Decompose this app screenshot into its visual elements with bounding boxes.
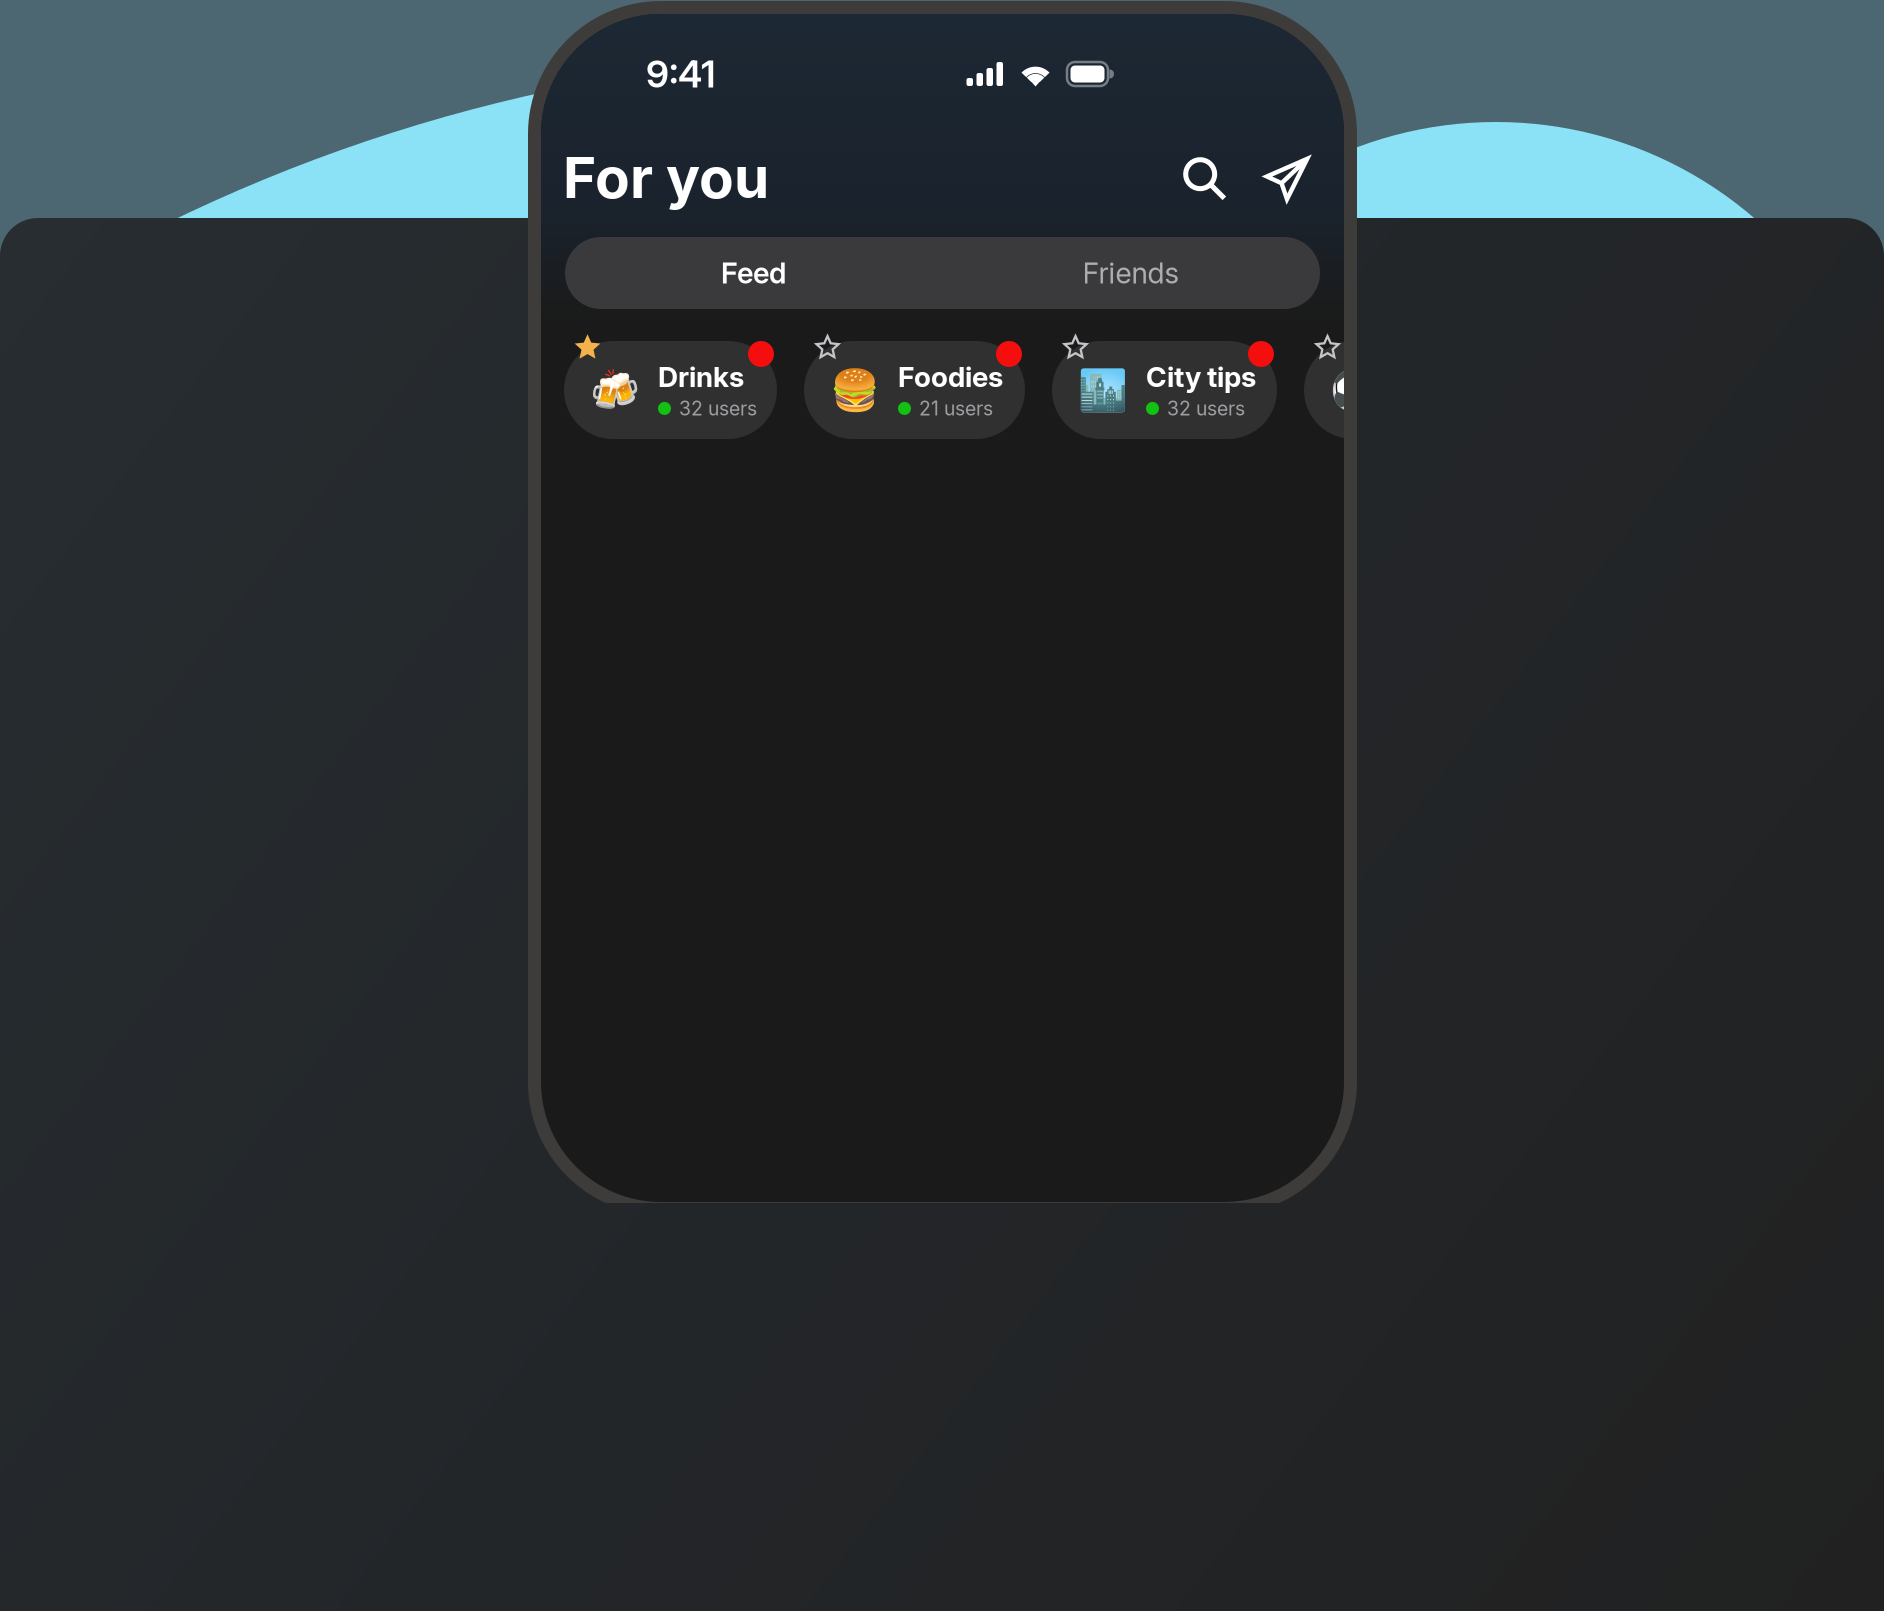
staticText: 32 users <box>1167 397 1245 420</box>
button[interactable]: 🏙️ <box>1052 328 1277 439</box>
staticText: For you <box>563 143 769 212</box>
staticText: Feed <box>721 256 786 290</box>
staticText: City tips <box>1146 360 1256 394</box>
button[interactable]: Search <box>1172 146 1238 212</box>
staticText: Drinks <box>658 360 744 394</box>
button[interactable]: Feed <box>565 237 942 309</box>
button[interactable]: 🍔 <box>804 328 1025 439</box>
button[interactable]: ⚽️ <box>1304 328 1519 439</box>
staticText: Foodies <box>898 360 1003 394</box>
button[interactable]: Share <box>1254 146 1320 212</box>
staticText: 9:41 <box>646 51 716 97</box>
staticText: 🍻 <box>590 367 640 413</box>
button[interactable]: 🍻 <box>564 328 777 439</box>
staticText: 🍔 <box>830 367 880 413</box>
staticText: Friends <box>1082 256 1179 290</box>
staticText: 32 users <box>679 397 757 420</box>
staticText: ⚽️ <box>1330 367 1380 413</box>
staticText: 21 users <box>919 397 993 420</box>
staticText: 🏙️ <box>1078 367 1128 413</box>
button[interactable]: Friends <box>942 237 1320 309</box>
